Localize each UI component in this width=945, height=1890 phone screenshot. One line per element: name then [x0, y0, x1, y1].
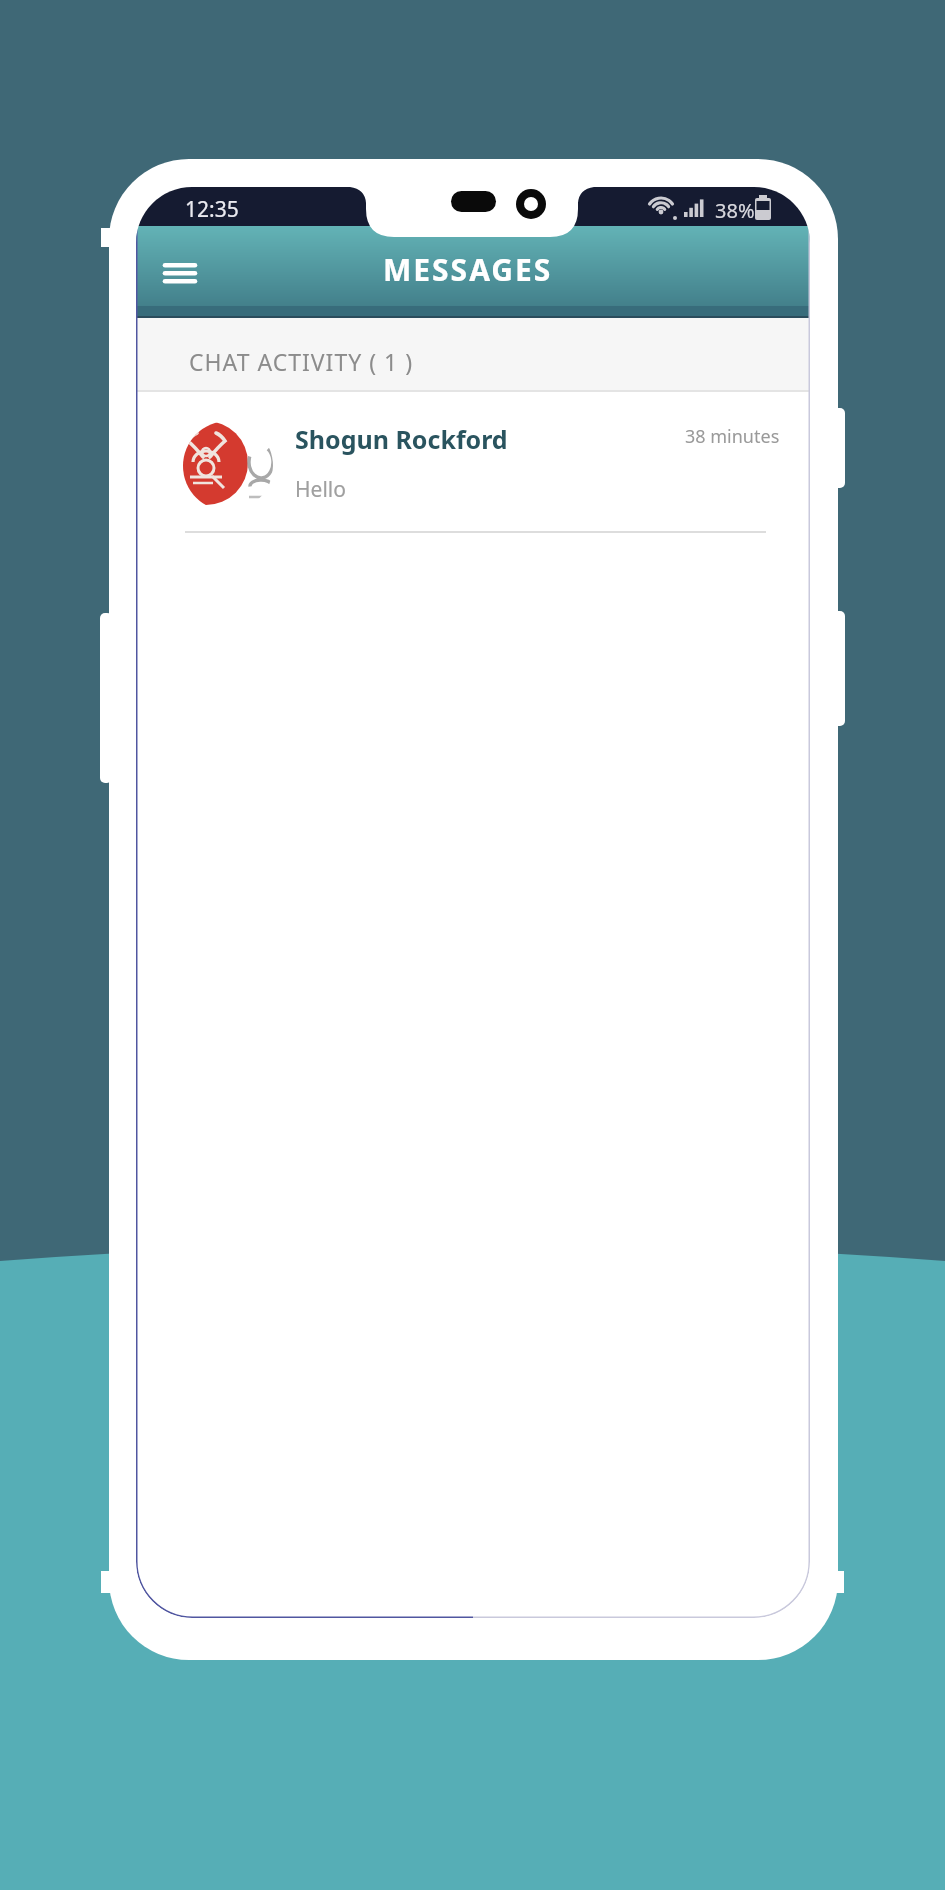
staticText: CHAT ACTIVITY ( 1 ) [189, 346, 414, 377]
staticText: 38% [715, 197, 755, 224]
staticText: Hello [295, 475, 346, 504]
staticText: 38 minutes [685, 424, 780, 449]
button[interactable]: Shogun Rockford [136, 392, 810, 552]
staticText: 12:35 [185, 195, 239, 224]
staticText: Shogun Rockford [295, 422, 508, 456]
button[interactable] [154, 252, 206, 294]
staticText: MESSAGES [383, 249, 553, 290]
